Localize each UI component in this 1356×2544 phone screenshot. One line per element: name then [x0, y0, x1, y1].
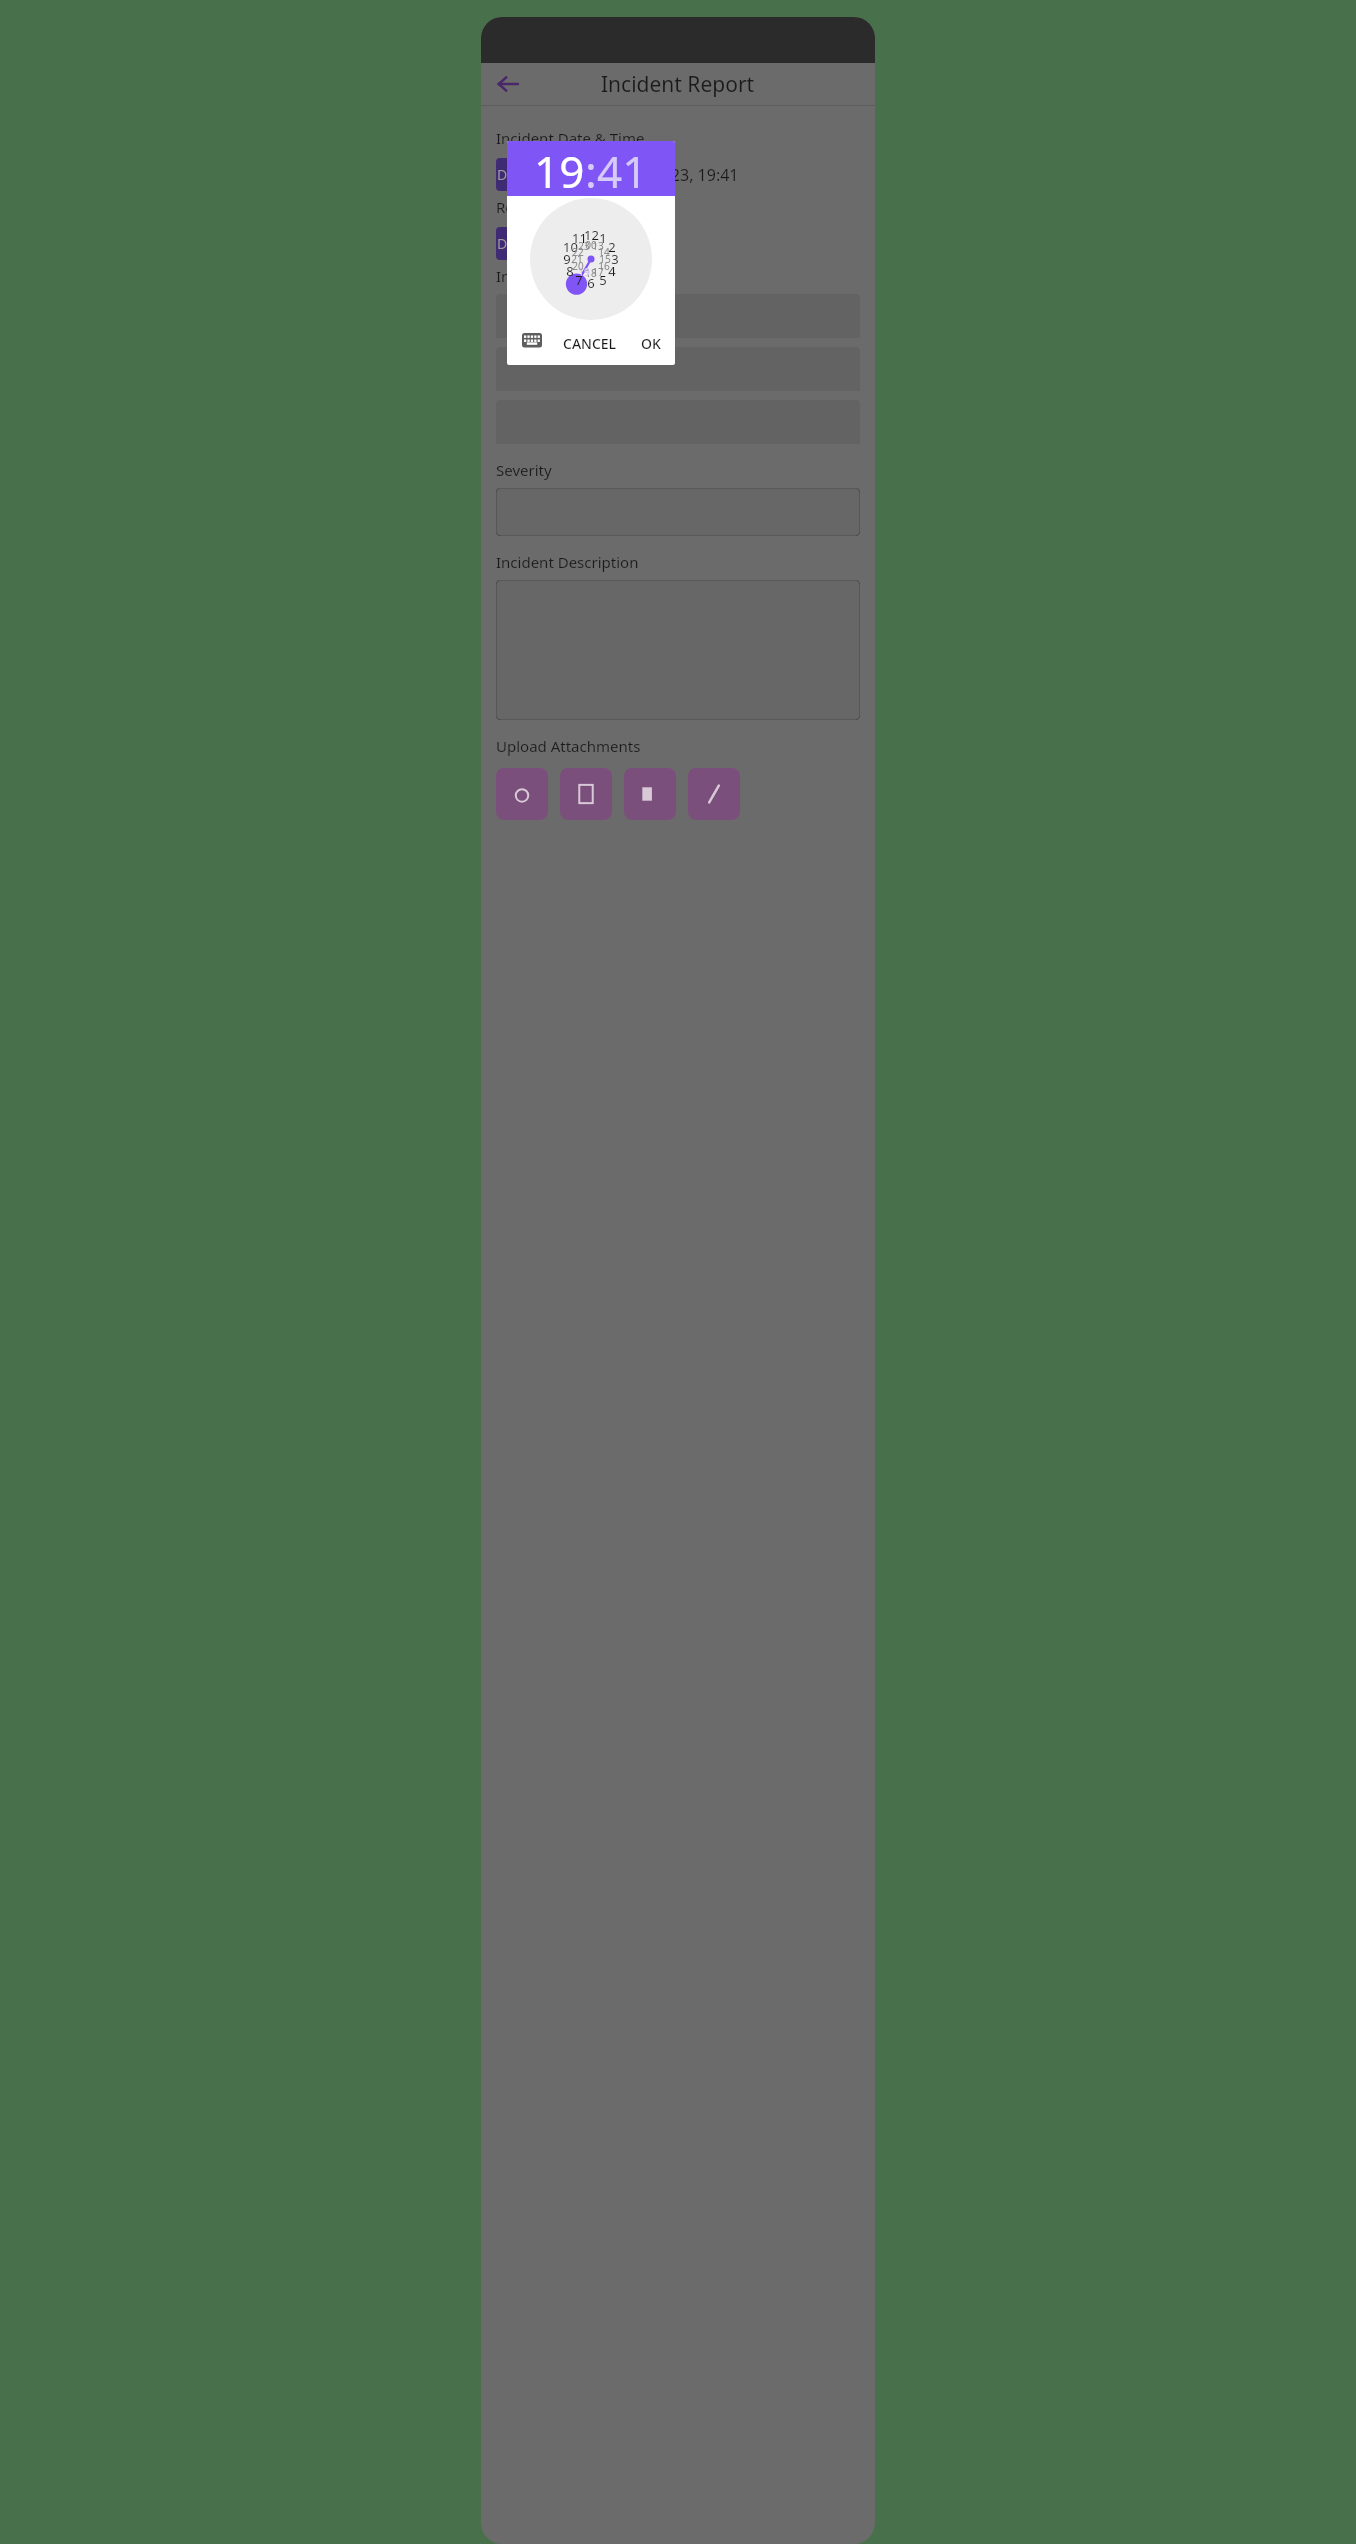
button[interactable]: Switch to text input [517, 326, 547, 356]
button[interactable]: 1 [530, 198, 652, 320]
staticText: 19 [578, 265, 590, 279]
staticText: 17 [592, 265, 604, 279]
staticText: Date & Time [497, 165, 578, 184]
button[interactable] [496, 488, 860, 536]
staticText: 6 [587, 274, 595, 292]
staticText: Severity [496, 460, 552, 480]
staticText: 21 [571, 252, 583, 266]
staticText: Incident Report [601, 70, 755, 99]
staticText: : [585, 141, 597, 196]
staticText: 9 [563, 250, 571, 268]
button[interactable]: CANCEL [559, 330, 621, 357]
staticText: 00 [585, 238, 597, 252]
button[interactable]: Date & Time [496, 158, 578, 191]
staticText: 10 [563, 238, 578, 256]
button[interactable]: Attachment 0 [496, 768, 548, 820]
button[interactable] [496, 347, 860, 391]
staticText: 7 [575, 271, 583, 289]
staticText: 20 [572, 259, 584, 273]
button[interactable]: Attachment 3 [688, 768, 740, 820]
button[interactable]: Date & Time [496, 227, 578, 260]
staticText: 2 [608, 238, 616, 256]
staticText: 16 [598, 259, 610, 273]
staticText: 4 [608, 262, 616, 280]
button[interactable]: OK [637, 330, 665, 357]
staticText: 15 [599, 252, 611, 266]
staticText: 1 [599, 229, 607, 247]
staticText: Report Date & Time [496, 197, 635, 217]
staticText: 8 [566, 262, 574, 280]
staticText: 11 [572, 229, 587, 247]
staticText: Incident Description [496, 552, 639, 572]
button[interactable]: 19 [534, 141, 585, 196]
button[interactable]: Back [487, 63, 529, 105]
staticText: 18 [585, 266, 597, 280]
button[interactable] [496, 294, 860, 338]
staticText: Upload Attachments [496, 736, 641, 756]
button[interactable]: Attachment 2 [624, 768, 676, 820]
staticText: 14 [598, 245, 610, 259]
staticText: 3 [611, 250, 619, 268]
staticText: 13 [592, 239, 604, 253]
staticText: May 25, 2023, 19:41 [590, 164, 739, 186]
staticText: 5 [599, 271, 607, 289]
staticText: 12 [584, 226, 599, 244]
staticText: 22 [572, 245, 584, 259]
staticText: Date & Time [497, 234, 578, 253]
staticText: Incident Details [496, 266, 606, 286]
button[interactable]: Attachment 1 [560, 768, 612, 820]
staticText: 23 [578, 239, 590, 253]
staticText: Incident Date & Time [496, 128, 645, 148]
button[interactable]: 41 [597, 141, 648, 196]
